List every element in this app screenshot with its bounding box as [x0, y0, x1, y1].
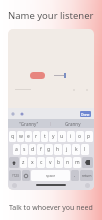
staticText: b: [57, 159, 61, 166]
button[interactable]: v: [46, 157, 54, 168]
button[interactable]: Emoji: [22, 170, 30, 181]
button[interactable]: q: [9, 131, 16, 142]
button[interactable]: d: [29, 144, 36, 155]
button[interactable]: h: [54, 144, 62, 155]
button[interactable]: Google: [11, 112, 15, 116]
button[interactable]: x: [28, 157, 36, 168]
staticText: l: [84, 146, 86, 153]
button[interactable]: space: [31, 170, 70, 181]
staticText: a: [15, 146, 18, 153]
staticText: g: [47, 146, 51, 153]
staticText: Name your listener: [8, 9, 94, 22]
button[interactable]: .: [71, 170, 79, 181]
button[interactable]: ?123: [9, 170, 21, 181]
button[interactable]: p: [85, 131, 93, 142]
button[interactable]: k: [72, 144, 80, 155]
staticText: q: [11, 133, 15, 140]
staticText: z: [22, 159, 25, 166]
button[interactable]: a: [13, 144, 20, 155]
button[interactable]: w: [17, 131, 24, 142]
button[interactable]: "Granny": [8, 119, 50, 128]
staticText: e: [27, 133, 30, 140]
button[interactable]: Shift: [9, 157, 19, 168]
staticText: space: [46, 173, 56, 178]
button[interactable]: b: [55, 157, 63, 168]
button[interactable]: r: [33, 131, 40, 142]
staticText: .: [74, 172, 76, 179]
staticText: c: [40, 159, 43, 166]
button[interactable]: Voice input: [20, 112, 24, 116]
button[interactable]: s: [21, 144, 28, 155]
staticText: Granny: [65, 121, 81, 127]
button[interactable]: Microphone: [85, 183, 90, 188]
button[interactable]: Done: [80, 111, 91, 117]
button[interactable]: [30, 72, 45, 79]
button[interactable]: c: [37, 157, 45, 168]
staticText: u: [60, 133, 64, 140]
button[interactable]: j: [63, 144, 71, 155]
staticText: o: [78, 133, 82, 140]
button[interactable]: Backspace: [82, 157, 93, 168]
button[interactable]: e: [25, 131, 32, 142]
staticText: v: [49, 159, 52, 166]
button[interactable]: Granny: [51, 119, 94, 128]
staticText: return: [82, 174, 92, 178]
staticText: h: [56, 146, 60, 153]
button[interactable]: return: [80, 170, 93, 181]
staticText: "Granny": [19, 121, 39, 127]
staticText: m: [75, 159, 80, 166]
button[interactable]: o: [76, 131, 84, 142]
button[interactable]: n: [64, 157, 72, 168]
staticText: Talk to whoever you need: [9, 203, 93, 213]
staticText: j: [66, 146, 68, 153]
staticText: Done: [81, 112, 90, 117]
button[interactable]: m: [73, 157, 81, 168]
staticText: k: [75, 146, 78, 153]
staticText: y: [52, 133, 55, 140]
button[interactable]: u: [58, 131, 66, 142]
staticText: s: [23, 146, 26, 153]
staticText: ?123: [12, 174, 19, 178]
staticText: r: [35, 133, 38, 140]
button[interactable]: y: [49, 131, 57, 142]
button[interactable]: Language: [12, 183, 17, 188]
staticText: x: [31, 159, 34, 166]
button[interactable]: i: [67, 131, 75, 142]
button[interactable]: z: [20, 157, 27, 168]
staticText: w: [19, 133, 23, 140]
button[interactable]: g: [45, 144, 53, 155]
button[interactable]: t: [41, 131, 48, 142]
staticText: p: [87, 133, 91, 140]
staticText: d: [31, 146, 35, 153]
button[interactable]: l: [81, 144, 89, 155]
staticText: t: [44, 133, 46, 140]
staticText: f: [40, 146, 42, 153]
button[interactable]: f: [37, 144, 44, 155]
staticText: n: [66, 159, 70, 166]
staticText: i: [70, 133, 72, 140]
